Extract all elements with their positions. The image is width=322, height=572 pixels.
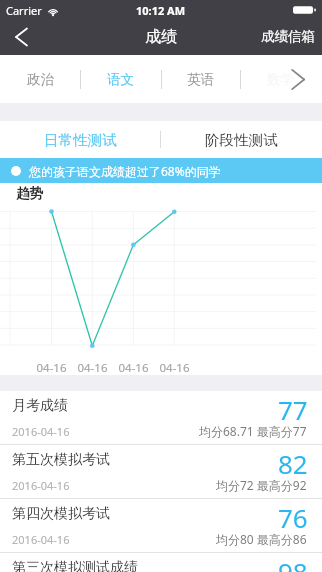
button[interactable]: 数学 bbox=[240, 55, 320, 103]
staticText: 数学 bbox=[267, 71, 294, 88]
staticText: 语文 bbox=[107, 71, 134, 88]
staticText: 日常性测试 bbox=[44, 131, 117, 149]
staticText: 82 bbox=[278, 446, 308, 481]
staticText: 2016-04-16 bbox=[12, 424, 70, 439]
staticText: 76 bbox=[278, 500, 308, 535]
staticText: 成绩信箱 bbox=[261, 28, 315, 45]
button[interactable]: 第四次模拟考试 bbox=[0, 499, 322, 553]
staticText: 政治 bbox=[27, 71, 54, 88]
staticText: Carrier bbox=[6, 3, 42, 18]
button[interactable]: 政治 bbox=[0, 55, 80, 103]
button[interactable]: Back bbox=[0, 20, 42, 55]
staticText: 第五次模拟考试 bbox=[12, 451, 110, 469]
staticText: 成绩 bbox=[145, 27, 177, 47]
staticText: 第四次模拟考试 bbox=[12, 505, 110, 523]
button[interactable]: More subjects bbox=[283, 55, 313, 103]
button[interactable]: 语文 bbox=[80, 55, 160, 103]
staticText: 第三次模拟测试成绩 bbox=[12, 559, 138, 572]
staticText: 04-16 bbox=[154, 360, 195, 375]
staticText: 英语 bbox=[187, 71, 214, 88]
button[interactable]: 英语 bbox=[160, 55, 240, 103]
staticText: 10:12 AM bbox=[136, 3, 186, 18]
staticText: 阶段性测试 bbox=[205, 131, 278, 149]
staticText: 均分68.71 最高分77 bbox=[199, 423, 307, 439]
staticText: 98 bbox=[278, 554, 308, 572]
button[interactable]: 日常性测试 bbox=[0, 121, 160, 158]
staticText: 您的孩子语文成绩超过了68%的同学 bbox=[29, 163, 221, 179]
button[interactable]: 月考成绩 bbox=[0, 391, 322, 445]
staticText: 2016-04-16 bbox=[12, 532, 70, 547]
staticText: 月考成绩 bbox=[12, 397, 68, 415]
staticText: 04-16 bbox=[31, 360, 72, 375]
staticText: 04-16 bbox=[72, 360, 113, 375]
button[interactable]: 成绩信箱 bbox=[0, 20, 322, 55]
staticText: 77 bbox=[278, 392, 308, 427]
staticText: 2016-04-16 bbox=[12, 478, 70, 493]
staticText: 均分80 最高分86 bbox=[216, 531, 307, 547]
staticText: 04-16 bbox=[113, 360, 154, 375]
staticText: 均分72 最高分92 bbox=[216, 477, 307, 493]
button[interactable]: 第三次模拟测试成绩 bbox=[0, 553, 322, 572]
button[interactable]: 第五次模拟考试 bbox=[0, 445, 322, 499]
staticText: 趋势 bbox=[16, 185, 43, 202]
button[interactable]: 阶段性测试 bbox=[161, 121, 322, 158]
